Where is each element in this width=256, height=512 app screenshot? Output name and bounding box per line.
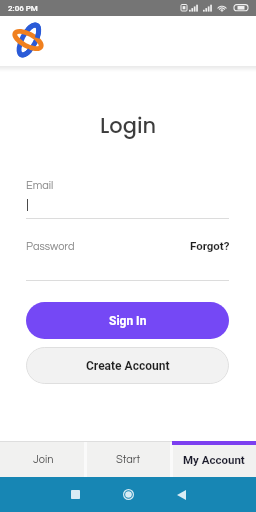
button[interactable]: Join — [0, 441, 86, 477]
button[interactable]: Create Account — [26, 347, 229, 384]
button[interactable]: Start — [86, 441, 171, 477]
staticText: Start — [116, 454, 141, 465]
staticText: Forgot? — [190, 239, 230, 252]
button[interactable]: Forgot? — [190, 239, 230, 252]
button[interactable]: My Account — [171, 441, 256, 477]
button[interactable]: Recent apps — [53, 477, 97, 512]
staticText: 2:06 PM — [8, 4, 38, 13]
staticText: Password — [26, 241, 75, 252]
staticText: Login — [0, 111, 256, 140]
button[interactable]: Home — [106, 477, 150, 512]
button[interactable]: Back — [159, 477, 203, 512]
staticText: My Account — [183, 453, 245, 466]
staticText: Email — [26, 180, 54, 191]
staticText: Sign In — [109, 314, 147, 328]
staticText: Join — [33, 454, 54, 465]
staticText: Create Account — [86, 359, 170, 373]
button[interactable]: Sign In — [26, 302, 229, 339]
